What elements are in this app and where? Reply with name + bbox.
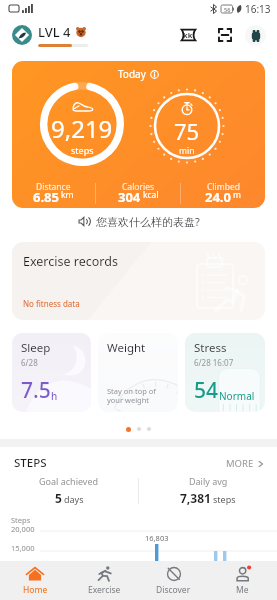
staticText: 304 <box>118 188 141 202</box>
staticText: m <box>233 189 241 201</box>
staticText: Goal achieved <box>39 475 99 487</box>
button[interactable]: KK card <box>176 23 200 47</box>
button[interactable]: 7.5 <box>12 333 91 412</box>
staticText: Climbed <box>207 181 240 193</box>
staticText: Today <box>118 67 146 81</box>
staticText: 20,000 <box>11 524 35 534</box>
button[interactable]: Discover <box>139 561 208 600</box>
staticText: 75 <box>174 116 200 146</box>
staticText: 9,219 <box>51 112 113 145</box>
button[interactable]: 您喜欢什么样的表盘? <box>0 211 277 231</box>
staticText: 16,803 <box>145 533 169 543</box>
button[interactable]: Today <box>12 61 265 208</box>
staticText: 16:13 <box>245 2 271 16</box>
staticText: LVL 4 <box>38 23 71 41</box>
staticText: Steps <box>11 515 31 525</box>
staticText: STEPS <box>14 455 47 471</box>
button[interactable]: Scan <box>213 23 237 47</box>
staticText: Home <box>23 584 48 596</box>
staticText: Stay on top of your weight <box>107 386 164 405</box>
staticText: 6/28 <box>21 357 38 368</box>
staticText: Distance <box>36 181 71 193</box>
staticText: Weight <box>107 340 146 356</box>
staticText: 7,381 <box>180 490 211 506</box>
button[interactable]: Exercise <box>70 561 139 600</box>
staticText: kk <box>183 30 193 40</box>
button[interactable]: Exercise records <box>12 242 265 320</box>
button[interactable]: Stay on top of your weight <box>98 333 178 412</box>
button[interactable]: Level badge <box>12 25 32 45</box>
staticText: kcal <box>143 189 159 201</box>
staticText: Discover <box>156 584 191 596</box>
staticText: km <box>61 189 74 201</box>
staticText: Daily avg <box>189 475 228 487</box>
staticText: steps <box>71 144 94 156</box>
staticText: Stress <box>194 340 227 356</box>
staticText: No fitness data <box>23 298 80 309</box>
button[interactable]: Me <box>208 561 277 600</box>
staticText: 您喜欢什么样的表盘? <box>96 214 200 229</box>
staticText: 6.85 <box>33 188 59 202</box>
staticText: Exercise records <box>23 253 118 270</box>
staticText: Exercise <box>88 584 121 596</box>
button[interactable]: MORE <box>226 457 265 470</box>
staticText: h <box>51 389 58 403</box>
button[interactable]: Distance <box>12 176 95 202</box>
staticText: 7.5 <box>21 376 51 405</box>
staticText: steps <box>213 493 236 505</box>
staticText: Calories <box>122 181 155 193</box>
staticText: 24.0 <box>205 188 231 202</box>
staticText: days <box>64 493 84 505</box>
button[interactable]: Climbed <box>181 176 265 202</box>
button[interactable]: Calories <box>96 176 180 202</box>
staticText: Sleep <box>21 340 51 356</box>
staticText: Normal <box>219 389 255 403</box>
staticText: 54 <box>194 376 219 405</box>
staticText: 56 <box>224 6 231 13</box>
staticText: Me <box>236 584 249 596</box>
button[interactable]: Profile <box>245 25 266 46</box>
button[interactable]: Home <box>0 561 70 600</box>
staticText: 5 <box>55 490 62 506</box>
staticText: min <box>179 145 195 157</box>
staticText: 15,000 <box>11 543 35 553</box>
button[interactable]: 54 <box>185 333 265 412</box>
staticText: 6/28 16:07 <box>194 357 234 368</box>
staticText: MORE <box>226 457 254 470</box>
